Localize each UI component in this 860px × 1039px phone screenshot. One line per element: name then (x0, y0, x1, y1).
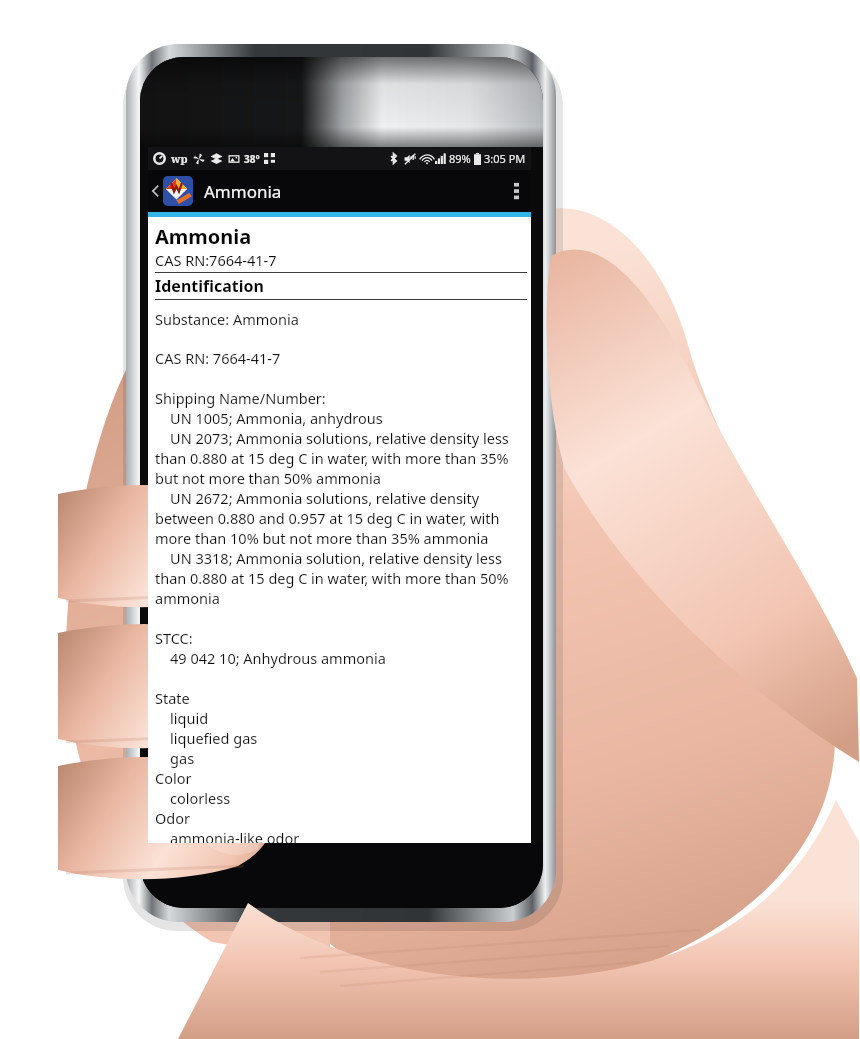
staticText: Identification (155, 275, 264, 297)
button[interactable]: More options (501, 170, 531, 212)
staticText: CAS RN:7664-41-7 (155, 250, 277, 270)
staticText: Substance: Ammonia CAS RN: 7664-41-7 Shi… (155, 309, 527, 843)
staticText: 3:05 PM (484, 151, 526, 166)
staticText: Ammonia (155, 223, 252, 250)
staticText: 38° (244, 152, 260, 166)
staticText: Ammonia (204, 180, 282, 203)
button[interactable]: Navigate up (148, 171, 195, 211)
staticText: 89% (449, 151, 471, 166)
staticText: wp (171, 151, 188, 166)
